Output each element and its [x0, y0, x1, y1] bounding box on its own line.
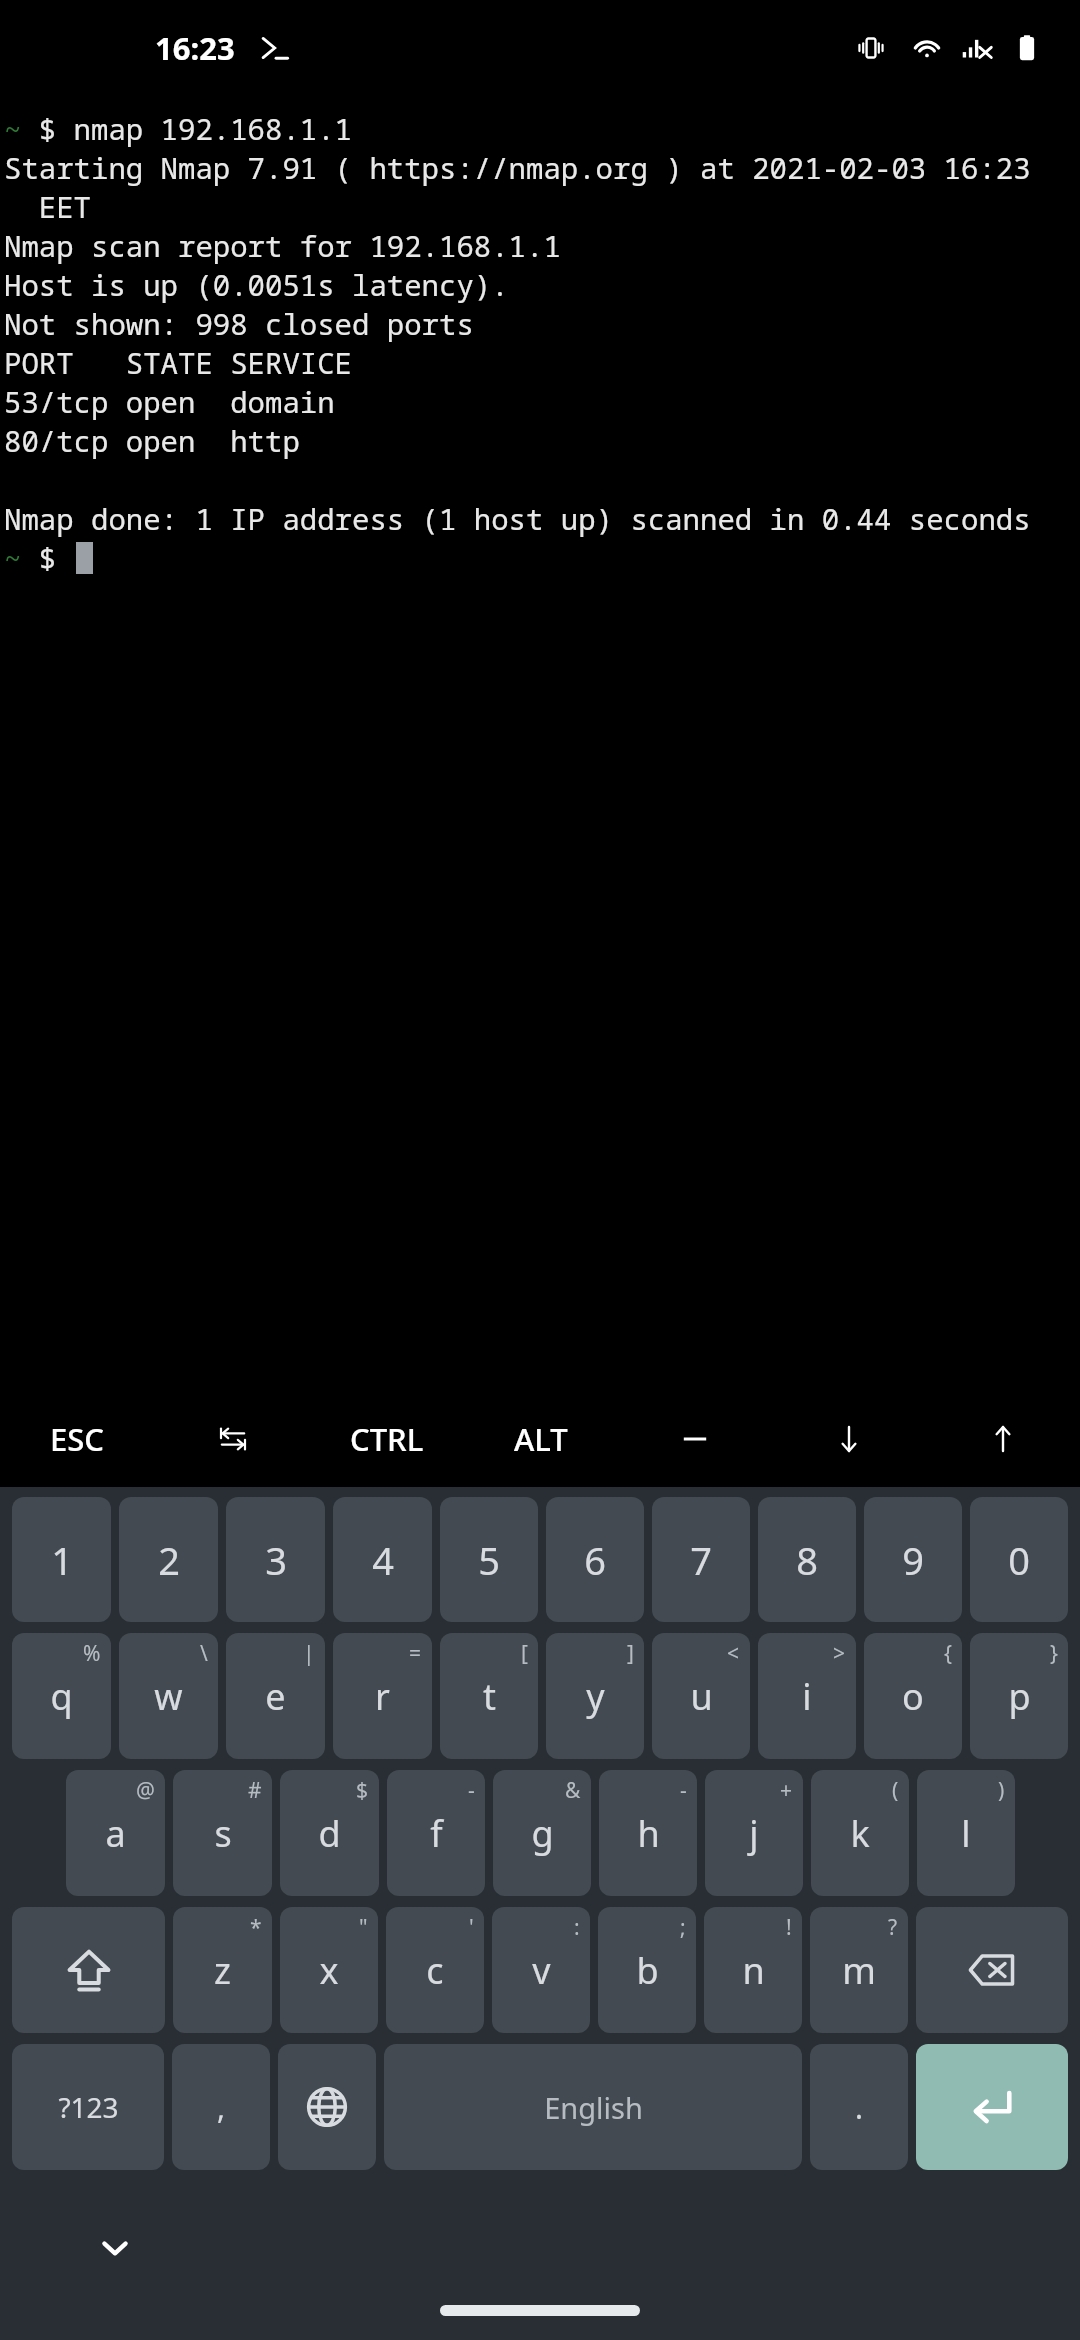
staticText: ~ $ nmap 192.168.1.1 [4, 109, 353, 148]
button[interactable]: ?123 [12, 2044, 164, 2170]
button[interactable]: y [546, 1633, 644, 1759]
button[interactable]: k [811, 1770, 909, 1896]
staticText: * [250, 1913, 262, 1942]
button[interactable]: 3 [226, 1497, 325, 1622]
staticText: Starting Nmap 7.91 ( https://nmap.org ) … [4, 148, 1031, 187]
staticText: " [359, 1913, 368, 1942]
staticText: h [637, 1809, 660, 1858]
staticText: ) [998, 1776, 1005, 1805]
staticText: ] [627, 1639, 634, 1668]
staticText: 6 [584, 1534, 606, 1586]
staticText: d [318, 1809, 341, 1858]
button[interactable]: 6 [546, 1497, 644, 1622]
button[interactable]: English [384, 2044, 802, 2170]
staticText: b [636, 1946, 659, 1995]
button[interactable]: ~ $ nmap 192.168.1.1 [0, 95, 1080, 1390]
staticText: e [265, 1672, 286, 1721]
button[interactable]: n [704, 1907, 802, 2033]
staticText: Nmap scan report for 192.168.1.1 [4, 226, 561, 265]
button[interactable]: d [280, 1770, 379, 1896]
button[interactable]: p [970, 1633, 1068, 1759]
staticText: English [544, 2088, 643, 2127]
staticText: ! [786, 1913, 792, 1942]
button[interactable]: . [810, 2044, 908, 2170]
staticText: 5 [478, 1534, 500, 1586]
staticText: ?123 [58, 2088, 119, 2126]
button[interactable]: q [12, 1633, 111, 1759]
staticText: n [742, 1946, 765, 1995]
button[interactable]: r [333, 1633, 432, 1759]
staticText: j [749, 1809, 759, 1858]
staticText: 7 [690, 1534, 712, 1586]
button[interactable]: Hide keyboard [80, 2213, 150, 2283]
staticText: = [409, 1639, 422, 1668]
staticText: & [565, 1776, 581, 1805]
staticText: 9 [902, 1534, 924, 1586]
button[interactable]: 7 [652, 1497, 750, 1622]
staticText: l [961, 1809, 971, 1858]
staticText: , [217, 2087, 226, 2128]
staticText: ' [469, 1913, 474, 1942]
staticText: y [586, 1672, 605, 1721]
button[interactable]: w [119, 1633, 218, 1759]
button[interactable]: ESC [0, 1390, 155, 1487]
button[interactable]: s [173, 1770, 272, 1896]
staticText: ( [892, 1776, 899, 1805]
button[interactable]: Enter [916, 2044, 1068, 2170]
button[interactable]: e [226, 1633, 325, 1759]
staticText: 2 [158, 1534, 180, 1586]
button[interactable]: Tab [155, 1390, 310, 1487]
button[interactable]: c [386, 1907, 484, 2033]
staticText: 0 [1008, 1534, 1030, 1586]
staticText: i [802, 1672, 812, 1721]
button[interactable]: i [758, 1633, 856, 1759]
staticText: CTRL [350, 1418, 424, 1460]
staticText: 53/tcp open domain [4, 382, 335, 421]
button[interactable]: 1 [12, 1497, 111, 1622]
button[interactable]: l [917, 1770, 1015, 1896]
button[interactable]: j [705, 1770, 803, 1896]
staticText: g [531, 1809, 554, 1858]
button[interactable]: m [810, 1907, 908, 2033]
button[interactable]: Shift [12, 1907, 165, 2033]
staticText: v [532, 1946, 551, 1995]
staticText: 8 [796, 1534, 818, 1586]
button[interactable]: b [598, 1907, 696, 2033]
staticText: s [214, 1809, 232, 1858]
button[interactable]: 2 [119, 1497, 218, 1622]
button[interactable]: v [492, 1907, 590, 2033]
button[interactable]: x [280, 1907, 378, 2033]
button[interactable]: 0 [970, 1497, 1068, 1622]
staticText: [ [521, 1639, 528, 1668]
button[interactable]: 8 [758, 1497, 856, 1622]
staticText: - [680, 1776, 687, 1805]
button[interactable]: o [864, 1633, 962, 1759]
staticText: # [248, 1776, 262, 1805]
button[interactable]: h [599, 1770, 697, 1896]
button[interactable]: Arrow up [926, 1390, 1080, 1487]
button[interactable]: Change language [278, 2044, 376, 2170]
staticText: < [727, 1639, 740, 1668]
staticText: t [483, 1672, 496, 1721]
staticText: ; [680, 1913, 686, 1942]
button[interactable]: CTRL [310, 1390, 464, 1487]
button[interactable]: f [387, 1770, 485, 1896]
button[interactable]: u [652, 1633, 750, 1759]
staticText: ~ $ [4, 538, 74, 577]
button[interactable]: , [172, 2044, 270, 2170]
button[interactable]: z [173, 1907, 272, 2033]
button[interactable]: Backspace [916, 1907, 1068, 2033]
button[interactable]: t [440, 1633, 538, 1759]
staticText: r [375, 1672, 390, 1721]
staticText: | [303, 1639, 315, 1668]
button[interactable]: a [66, 1770, 165, 1896]
button[interactable]: 4 [333, 1497, 432, 1622]
staticText: c [426, 1946, 444, 1995]
staticText: z [214, 1946, 231, 1995]
button[interactable]: Minus [618, 1390, 772, 1487]
button[interactable]: 5 [440, 1497, 538, 1622]
button[interactable]: ALT [464, 1390, 618, 1487]
button[interactable]: g [493, 1770, 591, 1896]
button[interactable]: Arrow down [772, 1390, 926, 1487]
button[interactable]: 9 [864, 1497, 962, 1622]
